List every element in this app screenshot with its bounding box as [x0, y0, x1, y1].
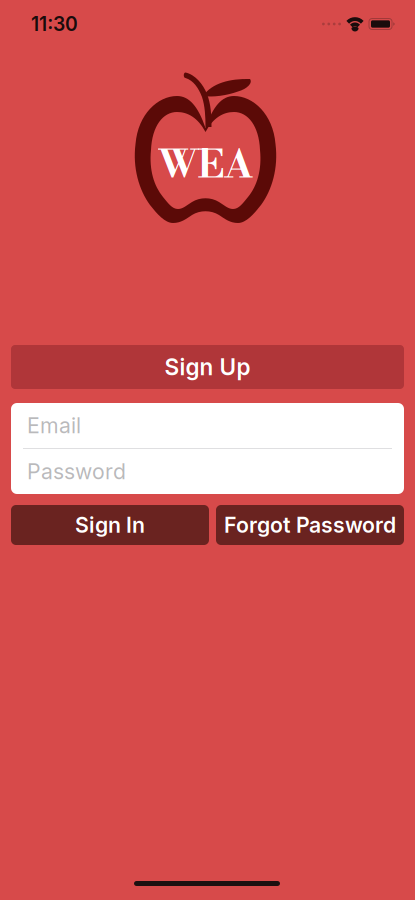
button[interactable]: Sign In	[11, 505, 209, 545]
button[interactable]: Forgot Password	[216, 505, 404, 545]
staticText: Sign Up	[164, 353, 250, 381]
button[interactable]: Sign Up	[11, 345, 404, 389]
staticText: Email	[27, 413, 81, 438]
staticText: WEA	[158, 142, 252, 190]
staticText: Forgot Password	[224, 512, 396, 538]
staticText: 11:30	[31, 12, 78, 36]
staticText: Password	[27, 459, 126, 484]
staticText: Sign In	[75, 512, 145, 538]
